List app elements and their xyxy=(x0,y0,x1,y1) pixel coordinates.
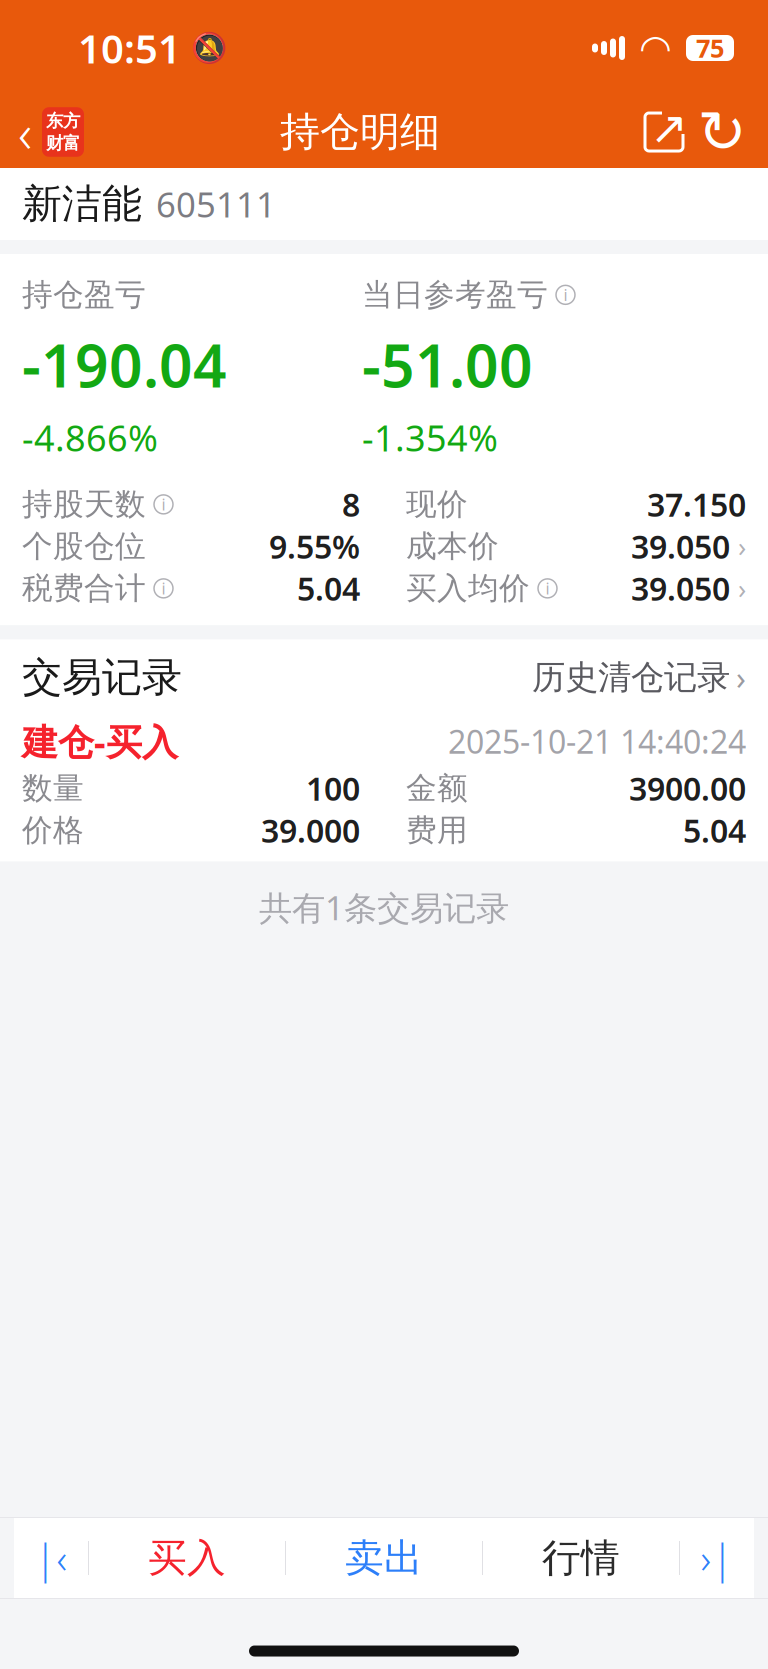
button[interactable]: 买入 xyxy=(89,1518,285,1598)
staticText: i xyxy=(545,578,549,599)
staticText: -51.00 xyxy=(362,326,533,404)
staticText: 3900.00 xyxy=(629,767,746,810)
staticText: 39.050 xyxy=(631,567,730,610)
staticText: 5.04 xyxy=(297,567,360,610)
staticText: 成本价 xyxy=(406,527,499,565)
staticText: 持仓明细 xyxy=(280,107,440,156)
staticText: 9.55% xyxy=(269,525,360,568)
staticText: ‹ xyxy=(18,97,32,167)
staticText: 税费合计 xyxy=(22,569,146,607)
staticText: 100 xyxy=(306,767,360,810)
staticText: 建仓-买入 xyxy=(22,717,178,765)
staticText: 39.000 xyxy=(261,809,360,852)
staticText: 价格 xyxy=(22,811,84,849)
staticText: › xyxy=(736,656,746,699)
staticText: -1.354% xyxy=(362,414,498,461)
staticText: i xyxy=(161,578,165,599)
staticText: 费用 xyxy=(406,811,468,849)
staticText: 10:51 xyxy=(78,21,181,74)
staticText: -190.04 xyxy=(22,326,227,404)
staticText: 当日参考盈亏 xyxy=(362,276,548,314)
staticText: i xyxy=(563,284,567,305)
button[interactable]: Previous xyxy=(14,1518,88,1598)
staticText: 买入均价 xyxy=(406,569,530,607)
staticText: 历史清仓记录 xyxy=(532,657,730,698)
staticText: -4.866% xyxy=(22,414,158,461)
staticText: 共有1条交易记录 xyxy=(259,885,509,929)
staticText: ↻ xyxy=(697,99,746,165)
staticText: 持仓盈亏 xyxy=(22,276,146,314)
staticText: 持股天数 xyxy=(22,485,146,523)
button[interactable]: Back xyxy=(0,91,84,173)
staticText: 买入 xyxy=(148,1534,226,1582)
staticText: 8 xyxy=(342,483,360,526)
button[interactable]: Share xyxy=(636,104,692,160)
button[interactable]: Refresh xyxy=(692,104,752,160)
staticText: 交易记录 xyxy=(22,653,182,702)
staticText: › xyxy=(738,529,746,564)
staticText: 东方 xyxy=(46,110,80,131)
staticText: 现价 xyxy=(406,485,468,523)
staticText: 🔕 xyxy=(191,31,228,65)
button[interactable]: 卖出 xyxy=(286,1518,482,1598)
staticText: 数量 xyxy=(22,769,84,807)
staticText: 37.150 xyxy=(647,483,746,526)
staticText: 605111 xyxy=(156,181,276,227)
button[interactable]: 行情 xyxy=(483,1518,679,1598)
staticText: i xyxy=(161,494,165,515)
staticText: ↗ xyxy=(650,102,688,154)
staticText: 财富 xyxy=(46,132,80,154)
staticText: 新洁能 xyxy=(22,179,142,228)
staticText: 行情 xyxy=(542,1534,620,1582)
staticText: 39.050 xyxy=(631,525,730,568)
button[interactable]: Next xyxy=(680,1518,754,1598)
staticText: 个股仓位 xyxy=(22,527,146,565)
staticText: 5.04 xyxy=(683,809,746,852)
staticText: ›| xyxy=(700,1531,733,1584)
staticText: ◠ xyxy=(641,27,670,69)
staticText: |‹ xyxy=(34,1531,67,1584)
staticText: 卖出 xyxy=(345,1534,423,1582)
staticText: 2025-10-21 14:40:24 xyxy=(448,720,746,763)
button[interactable]: 历史清仓记录 xyxy=(532,648,746,707)
staticText: 金额 xyxy=(406,769,468,807)
staticText: › xyxy=(738,571,746,606)
staticText: 75 xyxy=(696,31,724,65)
